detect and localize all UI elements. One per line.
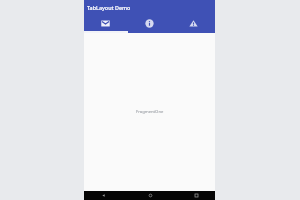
button[interactable]: Recent apps — [191, 191, 201, 200]
button[interactable]: Back — [98, 191, 108, 200]
staticText: TabLayout Demo — [87, 4, 131, 11]
button[interactable]: Messages — [84, 15, 127, 31]
button[interactable]: Alerts — [171, 15, 215, 31]
button[interactable]: Home — [145, 191, 155, 200]
button[interactable]: Info — [127, 15, 171, 31]
staticText: FragmentOne — [136, 109, 164, 115]
